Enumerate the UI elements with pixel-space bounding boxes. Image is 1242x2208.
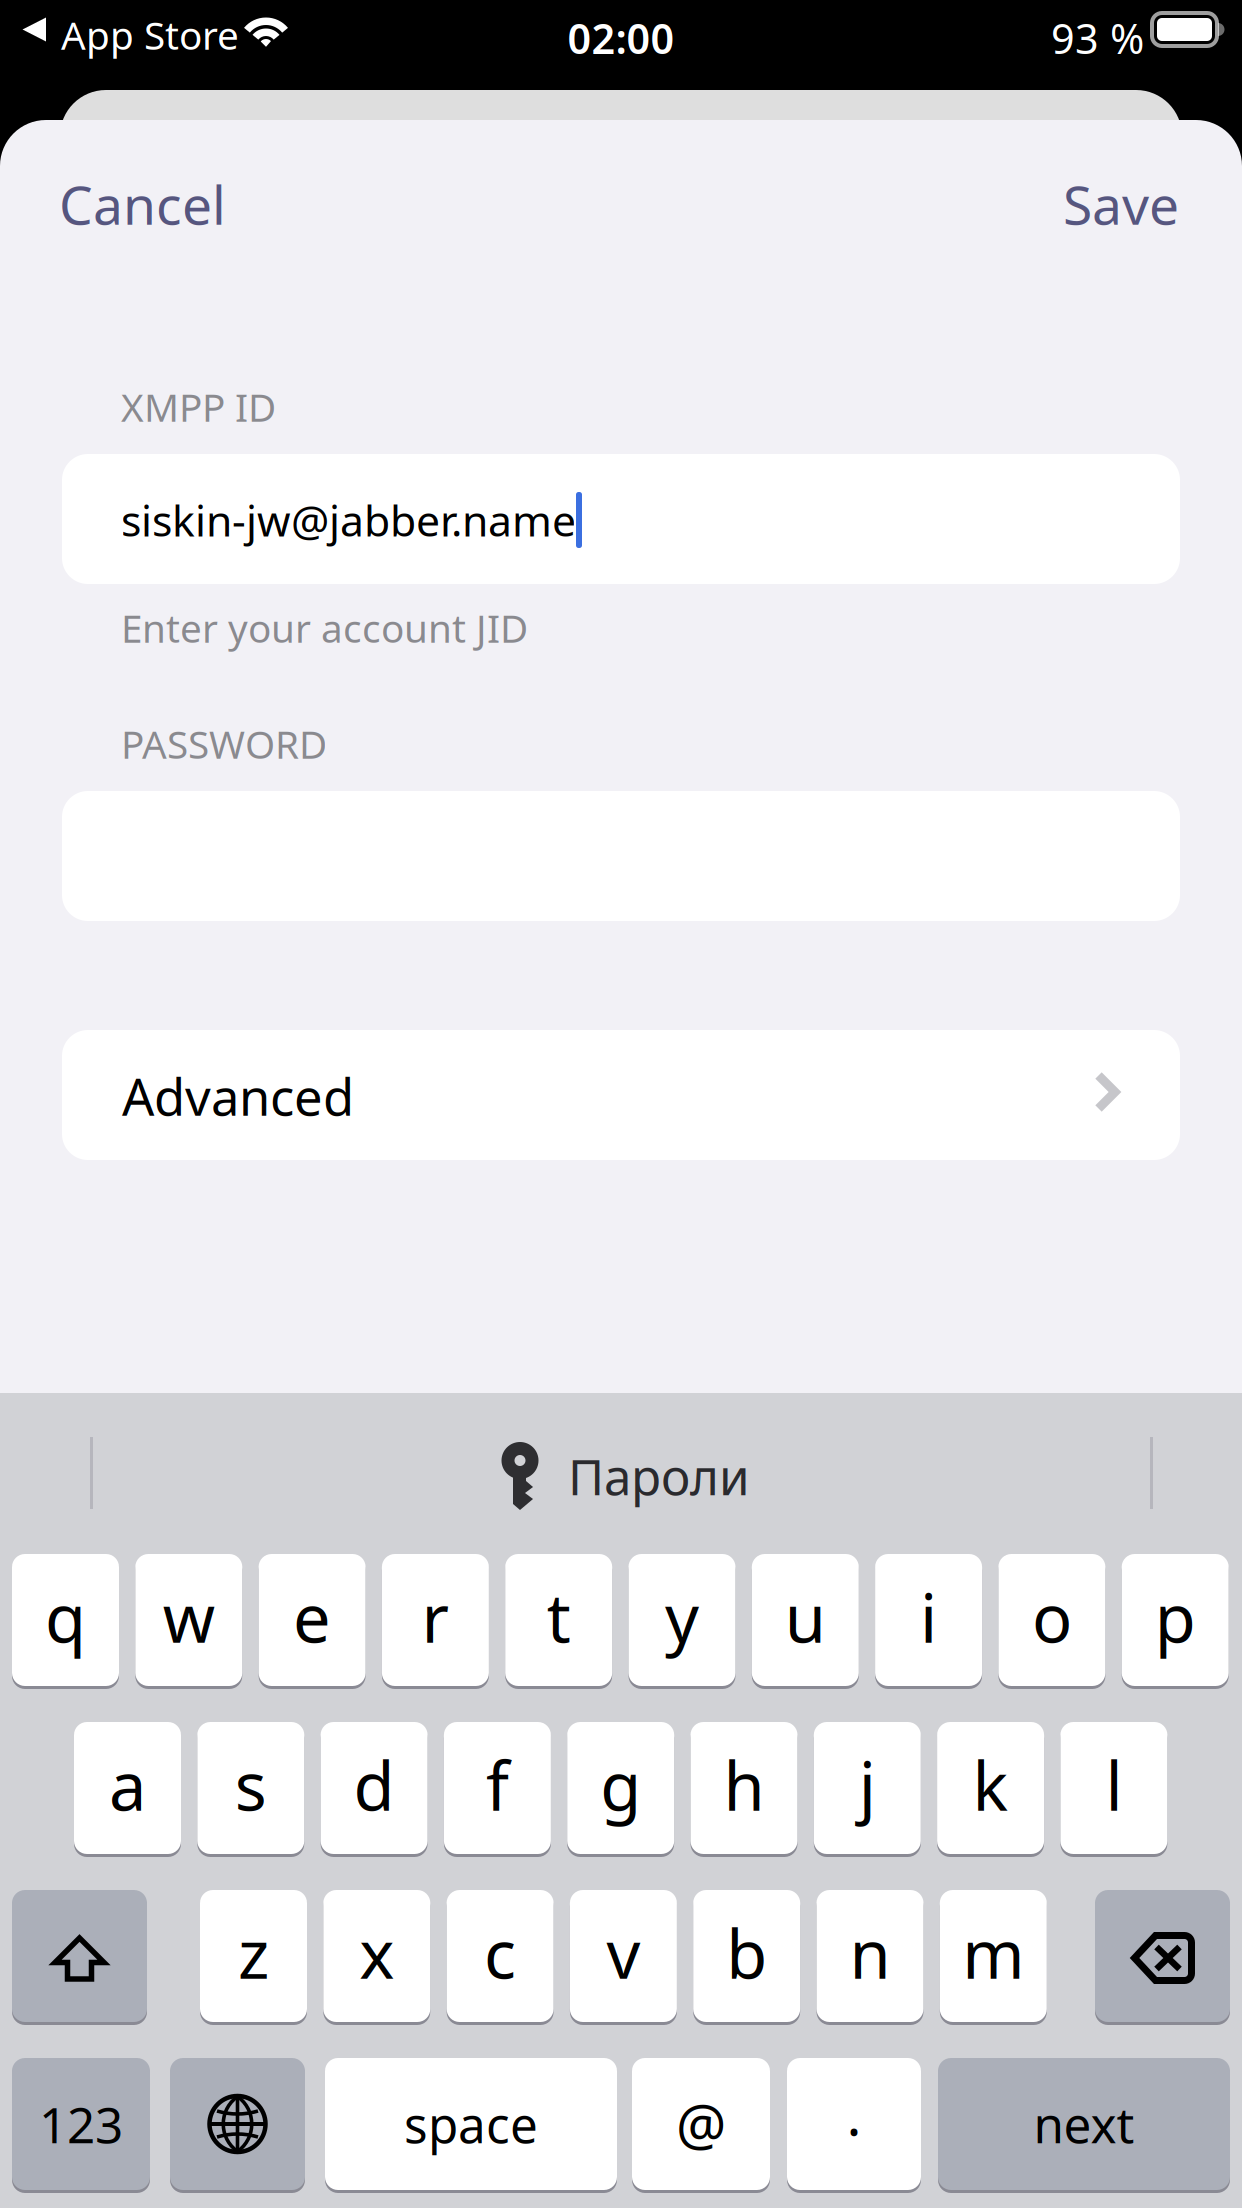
button[interactable]: l xyxy=(1060,1719,1167,1857)
staticText: f xyxy=(486,1741,509,1829)
button[interactable] xyxy=(325,2055,617,2193)
staticText: space xyxy=(404,2091,538,2157)
button[interactable]: d xyxy=(321,1719,428,1857)
button[interactable]: XMPP ID xyxy=(62,454,1180,584)
staticText: x xyxy=(359,1909,394,1997)
button[interactable]: q xyxy=(12,1551,119,1689)
staticText: k xyxy=(973,1741,1009,1829)
staticText: Пароли xyxy=(568,1443,750,1509)
button[interactable]: x xyxy=(323,1887,430,2025)
staticText: a xyxy=(109,1741,146,1829)
staticText: g xyxy=(600,1741,641,1829)
staticText: v xyxy=(606,1909,640,1997)
staticText: App Store xyxy=(61,9,239,60)
staticText: t xyxy=(547,1573,571,1661)
staticText: j xyxy=(859,1741,876,1829)
button[interactable]: j xyxy=(814,1719,921,1857)
staticText: . xyxy=(846,2077,861,2151)
staticText: u xyxy=(785,1573,826,1661)
staticText: 93 % xyxy=(1051,11,1144,65)
button[interactable]: o xyxy=(998,1551,1105,1689)
staticText: w xyxy=(163,1573,215,1661)
button[interactable]: r xyxy=(382,1551,489,1689)
staticText: h xyxy=(723,1741,764,1829)
button[interactable]: m xyxy=(940,1887,1047,2025)
staticText: 02:00 xyxy=(567,11,674,65)
button[interactable]: Advanced xyxy=(62,1030,1180,1160)
button[interactable]: Switch keyboard xyxy=(170,2055,305,2193)
staticText: e xyxy=(293,1573,331,1661)
staticText: m xyxy=(962,1909,1024,1997)
staticText: c xyxy=(484,1909,516,1997)
button[interactable]: f xyxy=(444,1719,551,1857)
button[interactable]: s xyxy=(197,1719,304,1857)
button[interactable]: p xyxy=(1122,1551,1229,1689)
staticText: Enter your account JID xyxy=(121,602,528,653)
button[interactable]: Shift xyxy=(12,1887,147,2025)
staticText: siskin-jw@jabber.name xyxy=(121,492,576,548)
button[interactable]: Save xyxy=(879,156,1179,252)
button[interactable]: Пароли xyxy=(400,1430,850,1522)
button[interactable]: a xyxy=(74,1719,181,1857)
staticText: PASSWORD xyxy=(121,718,327,769)
button[interactable] xyxy=(12,2055,150,2193)
button[interactable] xyxy=(938,2055,1230,2193)
button[interactable]: w xyxy=(135,1551,242,1689)
staticText: @ xyxy=(676,2087,726,2161)
staticText: p xyxy=(1155,1573,1196,1661)
staticText: i xyxy=(920,1573,937,1661)
button[interactable]: Delete xyxy=(1095,1887,1230,2025)
staticText: n xyxy=(849,1909,890,1997)
button[interactable]: g xyxy=(567,1719,674,1857)
button[interactable]: h xyxy=(690,1719,797,1857)
button[interactable]: u xyxy=(752,1551,859,1689)
staticText: next xyxy=(1033,2091,1134,2157)
staticText: b xyxy=(726,1909,767,1997)
button[interactable]: n xyxy=(816,1887,923,2025)
staticText: z xyxy=(238,1909,269,1997)
button[interactable]: i xyxy=(875,1551,982,1689)
button[interactable]: Cancel xyxy=(59,156,359,252)
staticText: d xyxy=(354,1741,395,1829)
button[interactable]: b xyxy=(693,1887,800,2025)
button[interactable] xyxy=(632,2055,770,2193)
staticText: r xyxy=(421,1573,449,1661)
button[interactable]: c xyxy=(447,1887,554,2025)
button[interactable]: k xyxy=(937,1719,1044,1857)
button[interactable]: z xyxy=(200,1887,307,2025)
staticText: Cancel xyxy=(59,169,226,239)
button[interactable]: v xyxy=(570,1887,677,2025)
button[interactable]: t xyxy=(505,1551,612,1689)
button[interactable]: y xyxy=(628,1551,735,1689)
button[interactable]: e xyxy=(259,1551,366,1689)
staticText: 123 xyxy=(39,2091,123,2157)
staticText: XMPP ID xyxy=(121,381,276,432)
staticText: Save xyxy=(1063,169,1179,239)
staticText: o xyxy=(1032,1573,1072,1661)
staticText: s xyxy=(235,1741,267,1829)
staticText: Advanced xyxy=(122,1062,354,1130)
staticText: l xyxy=(1105,1741,1122,1829)
button[interactable] xyxy=(787,2055,921,2193)
staticText: y xyxy=(665,1573,699,1661)
staticText: q xyxy=(45,1573,86,1661)
